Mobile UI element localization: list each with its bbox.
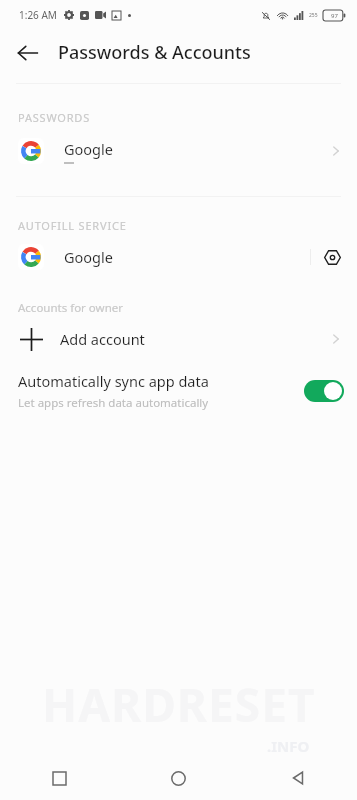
button[interactable]: Back xyxy=(8,33,48,73)
button[interactable]: Google xyxy=(0,233,357,281)
staticText: AUTOFILL SERVICE xyxy=(18,218,127,233)
staticText: PASSWORDS xyxy=(18,110,91,125)
staticText: Add account xyxy=(60,329,329,349)
staticText: 97 xyxy=(331,12,338,20)
button[interactable]: Google xyxy=(0,125,357,177)
staticText: 255 xyxy=(309,12,318,19)
staticText: Passwords & Accounts xyxy=(58,40,251,65)
staticText: Google xyxy=(64,247,310,267)
button[interactable]: Automatically sync app data xyxy=(0,362,357,420)
button[interactable]: Home xyxy=(119,756,238,800)
staticText: Automatically sync app data xyxy=(18,371,209,391)
staticText: Google xyxy=(64,139,113,159)
staticText: 1:26 AM xyxy=(19,8,57,22)
button[interactable]: Autofill settings xyxy=(311,236,353,278)
staticText: .INFO xyxy=(267,736,310,756)
button[interactable]: Back xyxy=(238,756,357,800)
staticText: Let apps refresh data automatically xyxy=(18,395,209,411)
button[interactable]: Recents xyxy=(0,756,119,800)
button[interactable]: Add account xyxy=(0,316,357,362)
staticText: Accounts for owner xyxy=(18,300,123,316)
button[interactable]: Automatically sync app data toggle xyxy=(304,380,344,402)
